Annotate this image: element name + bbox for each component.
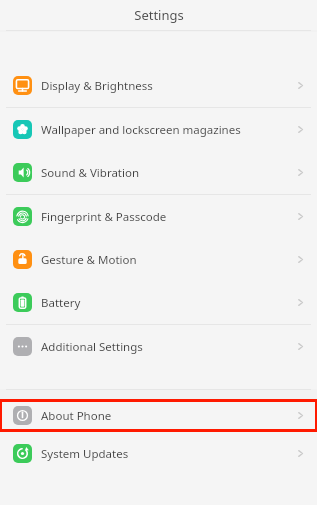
staticText: System Updates [41, 446, 129, 462]
staticText: Wallpaper and lockscreen magazines [41, 122, 241, 138]
staticText: Battery [41, 295, 81, 311]
staticText: Additional Settings [41, 339, 143, 355]
button[interactable]: Gesture & Motion [0, 238, 317, 281]
button[interactable]: System Updates [0, 432, 317, 475]
button[interactable]: About Phone [2, 402, 315, 429]
staticText: Sound & Vibration [41, 165, 140, 181]
staticText: About Phone [41, 408, 112, 424]
staticText: Fingerprint & Passcode [41, 209, 167, 225]
staticText: Settings [134, 6, 184, 24]
staticText: Display & Brightness [41, 78, 153, 94]
staticText: Gesture & Motion [41, 252, 137, 268]
button[interactable]: Sound & Vibration [0, 151, 317, 194]
button[interactable]: Battery [0, 281, 317, 324]
button[interactable]: Additional Settings [0, 325, 317, 368]
button[interactable]: Fingerprint & Passcode [0, 195, 317, 238]
button[interactable]: Wallpaper and lockscreen magazines [0, 108, 317, 151]
button[interactable]: Display & Brightness [0, 64, 317, 107]
